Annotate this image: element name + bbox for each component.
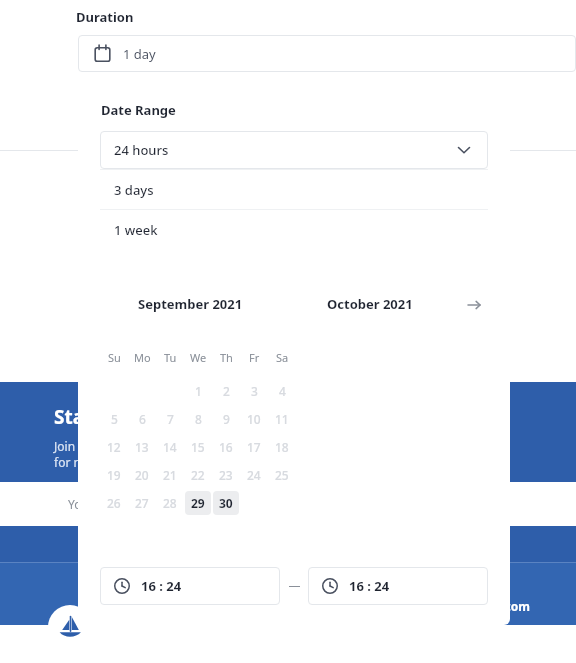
staticText: 21 — [163, 467, 177, 483]
button[interactable]: 4 — [268, 377, 296, 405]
staticText: 25 — [275, 467, 289, 483]
staticText: Fr — [249, 350, 260, 365]
button[interactable]: 1 — [184, 377, 212, 405]
button[interactable]: 16 — [212, 433, 240, 461]
button[interactable]: 2 — [212, 377, 240, 405]
staticText: 18 — [275, 439, 289, 455]
staticText: for new departures — [54, 454, 163, 470]
button[interactable]: 5 — [100, 405, 128, 433]
staticText: 2 — [223, 383, 230, 399]
button[interactable]: 9 — [212, 405, 240, 433]
staticText: 5 — [111, 411, 118, 427]
button[interactable]: 1 day — [78, 35, 576, 72]
button[interactable]: 14 — [156, 433, 184, 461]
staticText: Stay in the loop — [54, 404, 202, 430]
button[interactable]: 21 — [156, 461, 184, 489]
staticText: 17 — [247, 439, 261, 455]
staticText: We — [190, 350, 207, 365]
staticText: 24 hours — [114, 141, 454, 159]
staticText: 30 — [219, 495, 233, 511]
button[interactable]: Next month — [460, 295, 488, 315]
staticText: 23 — [219, 467, 233, 483]
button[interactable]: 16 : 24 — [100, 567, 280, 605]
staticText: 13 — [135, 439, 149, 455]
staticText: 6 — [139, 411, 146, 427]
button[interactable]: 20 — [128, 461, 156, 489]
button[interactable]: Chat — [48, 605, 92, 649]
button[interactable]: 17 — [240, 433, 268, 461]
button[interactable]: 30 — [212, 489, 240, 517]
button[interactable]: 12 — [100, 433, 128, 461]
staticText: Your email address — [68, 496, 176, 512]
staticText: Su — [108, 350, 121, 365]
staticText: 1 — [195, 383, 202, 399]
button[interactable]: 26 — [100, 489, 128, 517]
button[interactable]: 22 — [184, 461, 212, 489]
staticText: 29 — [191, 495, 205, 511]
staticText: 26 — [107, 495, 121, 511]
staticText: Mo — [134, 350, 151, 365]
button[interactable]: 1 week — [100, 210, 488, 249]
staticText: 19 — [107, 467, 121, 483]
staticText: 20 — [135, 467, 149, 483]
staticText: 24 — [247, 467, 261, 483]
staticText: Sa — [276, 350, 289, 365]
staticText: 14 — [163, 439, 177, 455]
button[interactable]: 3 — [240, 377, 268, 405]
staticText: Duration — [76, 8, 134, 26]
staticText: 16 : 24 — [141, 577, 182, 595]
button[interactable]: 16 : 24 — [308, 567, 488, 605]
staticText: 1 week — [114, 221, 158, 239]
staticText: 11 — [275, 411, 289, 427]
button[interactable]: 27 — [128, 489, 156, 517]
staticText: 16 — [219, 439, 233, 455]
button[interactable]: 7 — [156, 405, 184, 433]
button[interactable]: 19 — [100, 461, 128, 489]
button[interactable]: 24 hours — [100, 131, 488, 169]
button[interactable]: 6 — [128, 405, 156, 433]
staticText: 27 — [135, 495, 149, 511]
staticText: Th — [220, 350, 233, 365]
button[interactable]: 28 — [156, 489, 184, 517]
staticText: October 2021 — [327, 295, 413, 313]
button[interactable]: 13 — [128, 433, 156, 461]
button[interactable]: 11 — [268, 405, 296, 433]
staticText: Date Range — [101, 101, 176, 119]
staticText: 4 — [279, 383, 286, 399]
staticText: 3 — [251, 383, 258, 399]
staticText: 28 — [163, 495, 177, 511]
button[interactable]: 15 — [184, 433, 212, 461]
button[interactable]: 23 — [212, 461, 240, 489]
staticText: 22 — [191, 467, 205, 483]
staticText: 15 — [191, 439, 205, 455]
staticText: September 2021 — [138, 295, 243, 313]
staticText: https://example.com — [405, 598, 530, 614]
staticText: Tu — [164, 350, 177, 365]
button[interactable]: 29 — [184, 489, 212, 517]
staticText: 8 — [195, 411, 202, 427]
button[interactable]: 8 — [184, 405, 212, 433]
button[interactable]: 24 — [240, 461, 268, 489]
staticText: 16 : 24 — [349, 577, 390, 595]
button[interactable]: 18 — [268, 433, 296, 461]
staticText: 9 — [223, 411, 230, 427]
button[interactable]: 10 — [240, 405, 268, 433]
button[interactable]: 3 days — [100, 170, 488, 209]
staticText: 10 — [247, 411, 261, 427]
staticText: 1 day — [123, 45, 156, 63]
staticText: 7 — [167, 411, 174, 427]
staticText: Join our mailing list to get updates — [54, 438, 248, 454]
staticText: 3 days — [114, 181, 154, 199]
staticText: 12 — [107, 439, 121, 455]
button[interactable]: 25 — [268, 461, 296, 489]
